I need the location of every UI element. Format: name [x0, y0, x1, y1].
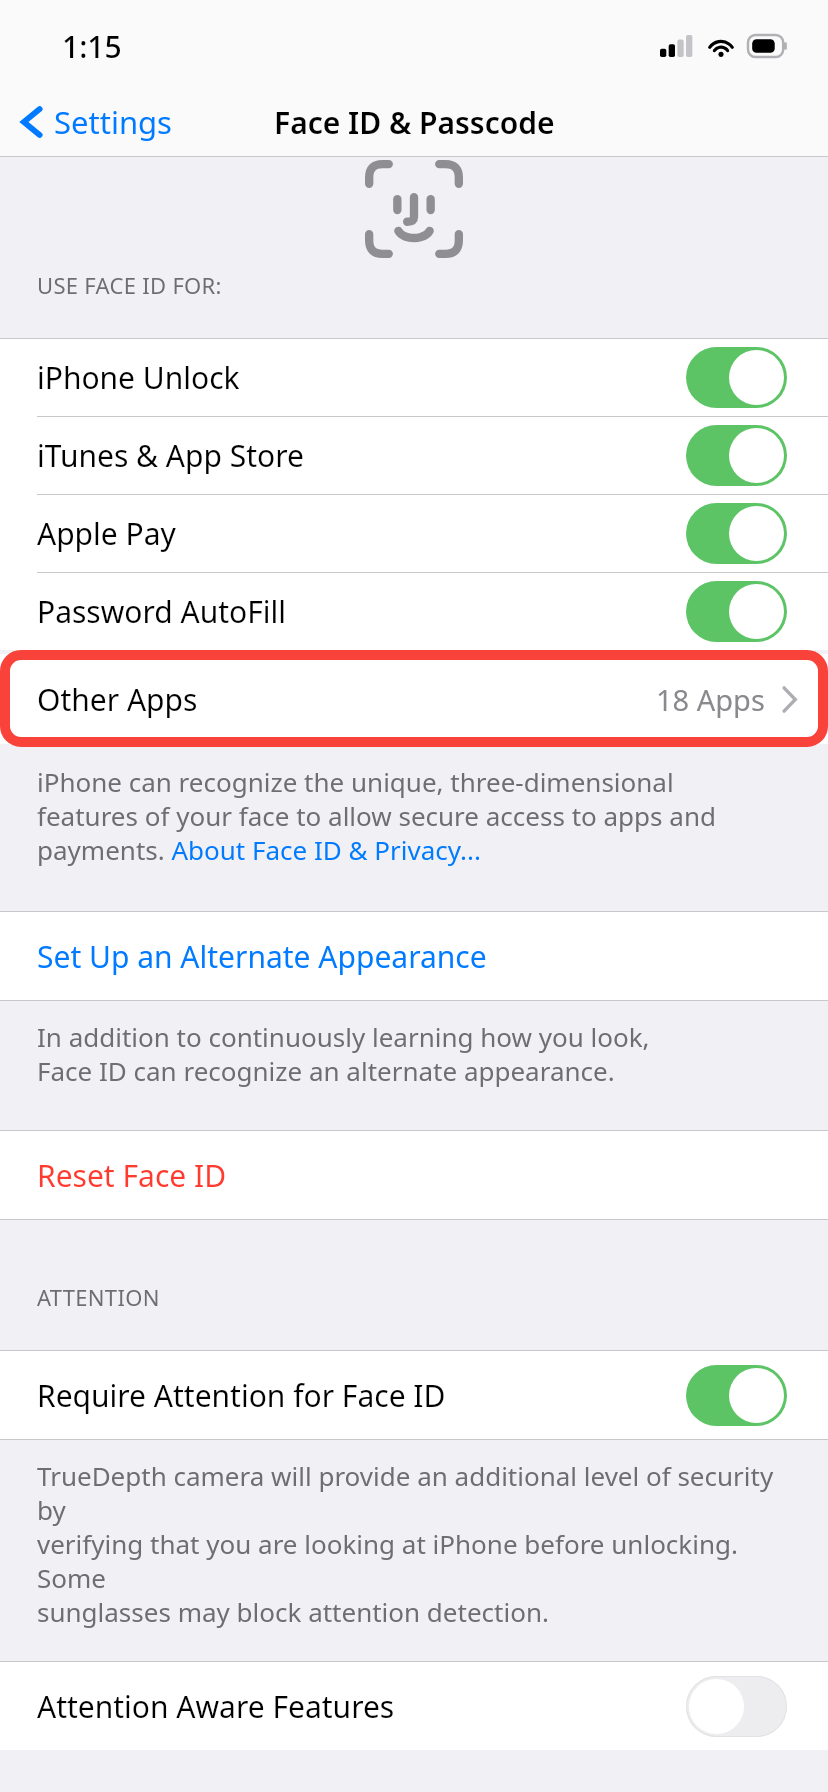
- button[interactable]: Apple Pay: [0, 495, 828, 573]
- button[interactable]: Other Apps: [0, 654, 828, 744]
- button[interactable]: On: [686, 425, 787, 486]
- button[interactable]: Reset Face ID: [0, 1131, 828, 1219]
- staticText: ATTENTION: [37, 1282, 160, 1312]
- staticText: iPhone Unlock: [37, 357, 240, 398]
- staticText: Require Attention for Face ID: [37, 1375, 446, 1416]
- staticText: In addition to continuously learning how…: [37, 1019, 650, 1088]
- staticText: 1:15: [62, 26, 122, 67]
- button[interactable]: On: [686, 581, 787, 642]
- staticText: Reset Face ID: [37, 1155, 227, 1196]
- button[interactable]: iPhone can recognize the unique, three-d…: [37, 764, 780, 867]
- button[interactable]: On: [686, 503, 787, 564]
- button[interactable]: Settings: [0, 95, 184, 149]
- button[interactable]: On: [686, 1365, 787, 1426]
- staticText: Attention Aware Features: [37, 1686, 395, 1727]
- staticText: Set Up an Alternate Appearance: [37, 936, 487, 977]
- staticText: TrueDepth camera will provide an additio…: [37, 1458, 808, 1629]
- staticText: iTunes & App Store: [37, 435, 304, 476]
- staticText: Apple Pay: [37, 513, 176, 554]
- button[interactable]: Set Up an Alternate Appearance: [0, 912, 828, 1000]
- staticText: Settings: [54, 101, 172, 143]
- button[interactable]: On: [686, 347, 787, 408]
- button[interactable]: iTunes & App Store: [0, 417, 828, 495]
- staticText: Other Apps: [37, 679, 198, 720]
- button[interactable]: Off: [686, 1676, 787, 1737]
- button[interactable]: Require Attention for Face ID: [0, 1351, 828, 1439]
- button[interactable]: Attention Aware Features: [0, 1662, 828, 1750]
- staticText: Password AutoFill: [37, 591, 286, 632]
- button[interactable]: iPhone Unlock: [0, 339, 828, 417]
- staticText: Face ID & Passcode: [274, 102, 555, 143]
- button[interactable]: Password AutoFill: [0, 573, 828, 650]
- staticText: 18 Apps: [656, 680, 765, 719]
- staticText: USE FACE ID FOR:: [37, 270, 222, 300]
